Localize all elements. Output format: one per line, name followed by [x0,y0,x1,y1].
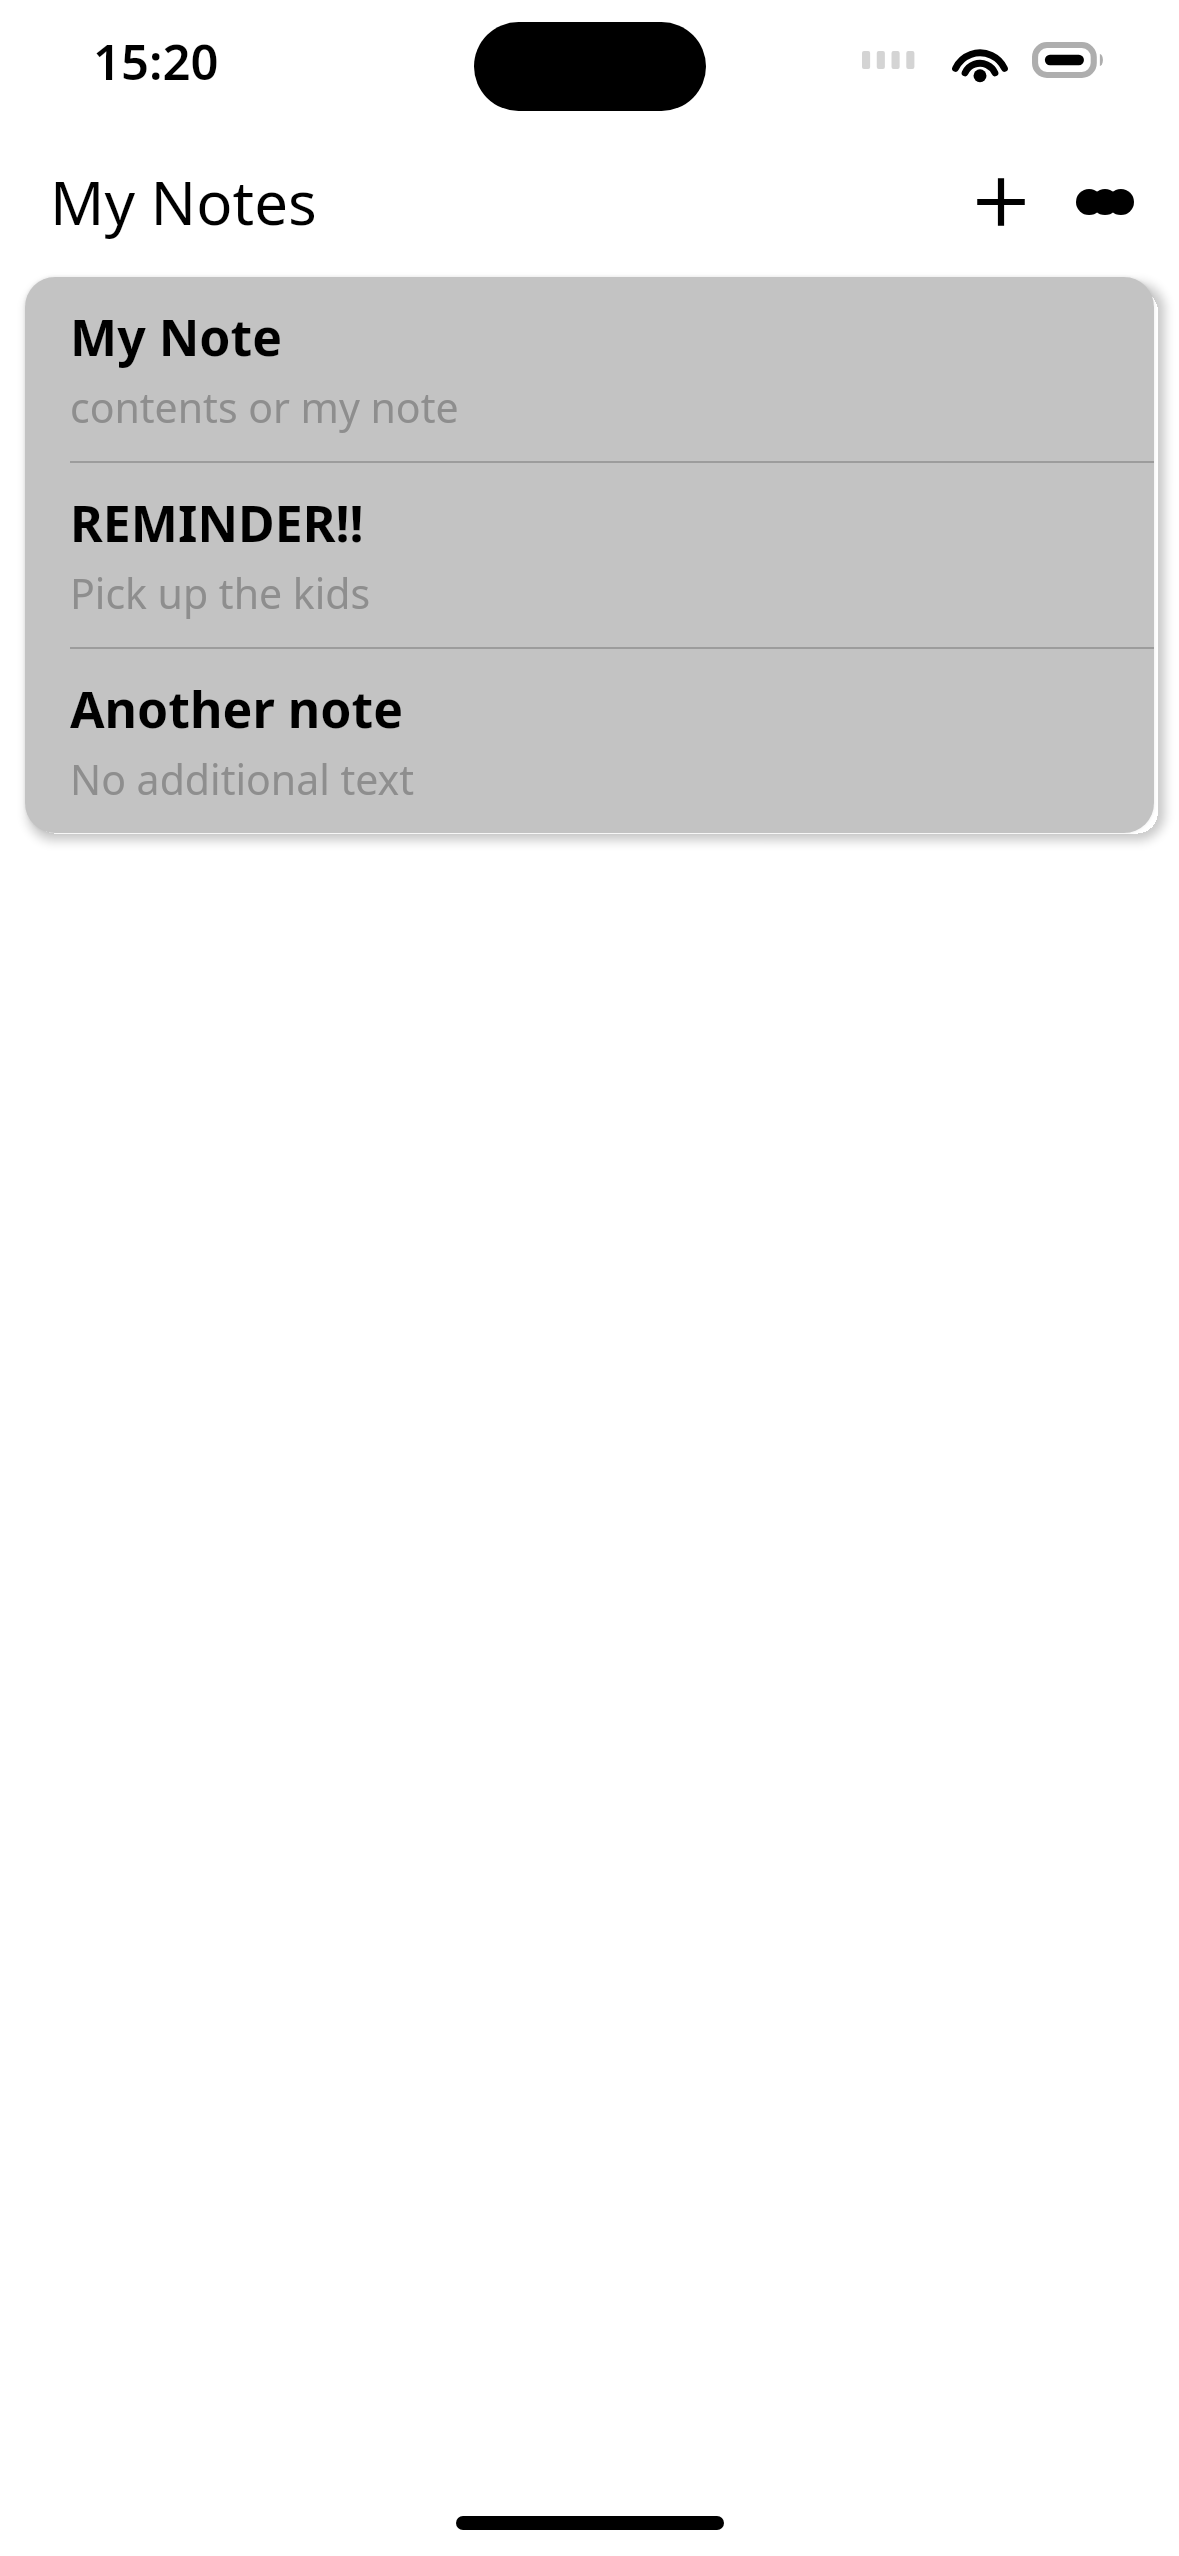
button[interactable]: My Note [25,277,1154,461]
staticText: 15:20 [93,28,219,95]
button[interactable]: Add note [949,150,1053,254]
staticText: Pick up the kids [70,565,371,621]
staticText: My Note [70,303,283,371]
staticText: Another note [70,675,404,743]
button[interactable]: Another note [25,649,1154,833]
staticText: contents or my note [70,379,459,435]
staticText: My Notes [50,161,317,243]
button[interactable]: More options [1053,150,1157,254]
staticText: REMINDER!! [70,489,364,557]
staticText: No additional text [70,751,414,807]
button[interactable]: REMINDER!! [25,463,1154,647]
